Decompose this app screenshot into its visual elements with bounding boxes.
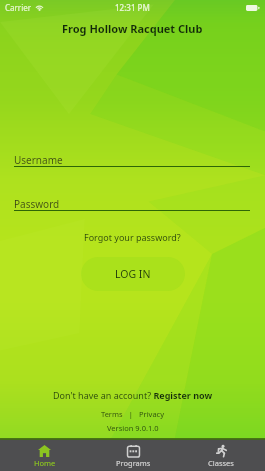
staticText: Don't have an account? Register now: [53, 389, 213, 401]
staticText: Username: [14, 153, 63, 167]
button[interactable]: Home: [0, 440, 89, 471]
staticText: LOG IN: [115, 267, 151, 281]
staticText: Forgot your password?: [84, 231, 181, 243]
button[interactable]: Password: [14, 197, 250, 212]
button[interactable]: Forgot your password?: [76, 228, 189, 246]
staticText: Frog Hollow Racquet Club: [62, 21, 203, 36]
button[interactable]: Programs: [89, 440, 177, 471]
staticText: 12:31 PM: [115, 2, 150, 13]
staticText: Programs: [116, 458, 151, 468]
staticText: Carrier: [5, 2, 32, 13]
staticText: Classes: [208, 458, 234, 468]
button[interactable]: Don't have an account? Register now: [49, 388, 217, 402]
button[interactable]: Classes: [177, 440, 265, 471]
button[interactable]: Terms: [101, 409, 123, 419]
staticText: Home: [34, 458, 56, 468]
staticText: |: [123, 409, 139, 419]
staticText: Password: [14, 197, 60, 211]
staticText: Version 9.0.1.0: [107, 423, 159, 433]
button[interactable]: Username: [14, 153, 250, 168]
button[interactable]: Privacy: [139, 409, 165, 419]
button[interactable]: LOG IN: [81, 257, 185, 291]
